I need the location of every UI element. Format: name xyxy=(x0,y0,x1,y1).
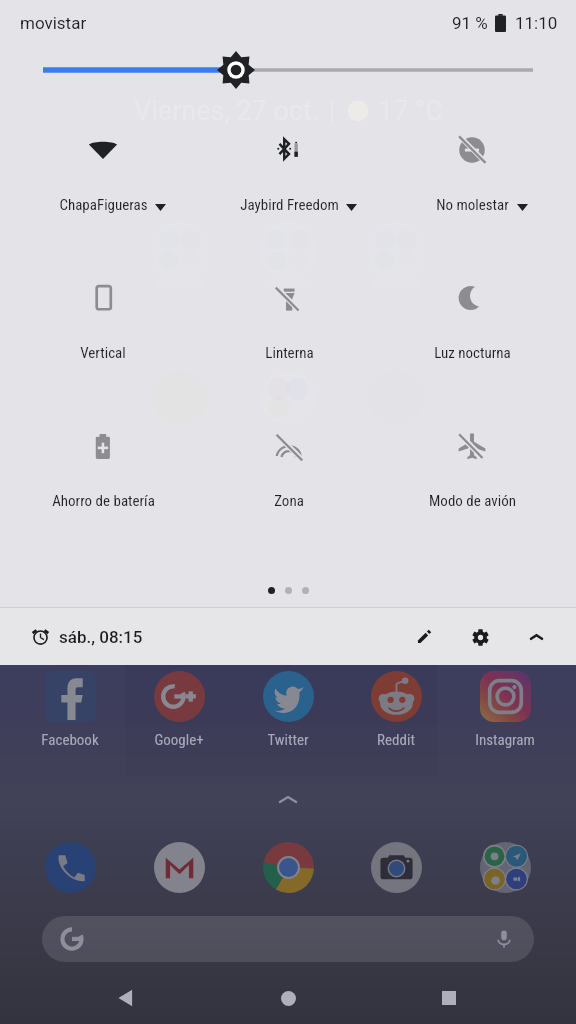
staticText: Modo de avión xyxy=(429,492,516,510)
staticText: 11:10 xyxy=(515,13,558,33)
button[interactable]: Google search xyxy=(42,916,534,962)
button[interactable]: Instagram xyxy=(451,671,559,749)
staticText: Jaybird Freedom xyxy=(240,196,339,214)
staticText: Twitter xyxy=(267,731,309,749)
button[interactable]: Gmail xyxy=(150,838,208,896)
button[interactable]: Google+ xyxy=(125,671,233,749)
button[interactable]: Chrome xyxy=(259,838,317,896)
staticText: Instagram xyxy=(475,731,535,749)
staticText: Luz nocturna xyxy=(434,344,511,362)
button[interactable]: Luz nocturna xyxy=(384,275,576,309)
button[interactable]: Settings xyxy=(456,613,504,661)
staticText: ChapaFigueras xyxy=(59,196,148,214)
button[interactable]: Reddit xyxy=(342,671,450,749)
staticText: Zona xyxy=(274,492,304,510)
button[interactable]: Ahorro de batería xyxy=(0,423,192,457)
button[interactable]: Back xyxy=(100,972,152,1024)
button[interactable]: No molestar xyxy=(384,127,576,161)
staticText: Reddit xyxy=(377,731,415,749)
staticText: Linterna xyxy=(265,344,314,362)
button[interactable]: Brightness xyxy=(0,46,576,94)
button[interactable]: Camera xyxy=(367,838,425,896)
staticText: sáb., 08:15 xyxy=(59,627,143,647)
button[interactable]: Linterna xyxy=(192,275,384,309)
staticText: movistar xyxy=(20,13,87,33)
staticText: Google+ xyxy=(154,731,204,749)
staticText: Ahorro de batería xyxy=(52,492,155,510)
button[interactable]: Collapse xyxy=(512,613,560,661)
button[interactable]: Vertical xyxy=(0,275,192,309)
button[interactable]: ChapaFigueras xyxy=(0,127,192,161)
button[interactable]: Recent apps xyxy=(423,972,475,1024)
button[interactable]: All apps xyxy=(268,788,308,810)
button[interactable]: Modo de avión xyxy=(384,423,576,457)
button[interactable]: Twitter xyxy=(234,671,342,749)
staticText: No molestar xyxy=(436,196,509,214)
button[interactable]: Edit xyxy=(400,613,448,661)
button[interactable]: Zona xyxy=(192,423,384,457)
staticText: Facebook xyxy=(41,731,99,749)
button[interactable]: Facebook xyxy=(16,671,124,749)
staticText: Vertical xyxy=(80,344,126,362)
button[interactable]: Phone xyxy=(41,838,99,896)
button[interactable]: Messaging folder xyxy=(476,838,534,896)
button[interactable]: Jaybird Freedom xyxy=(192,127,384,161)
staticText: 91 % xyxy=(452,13,488,33)
button[interactable]: Home xyxy=(262,972,314,1024)
